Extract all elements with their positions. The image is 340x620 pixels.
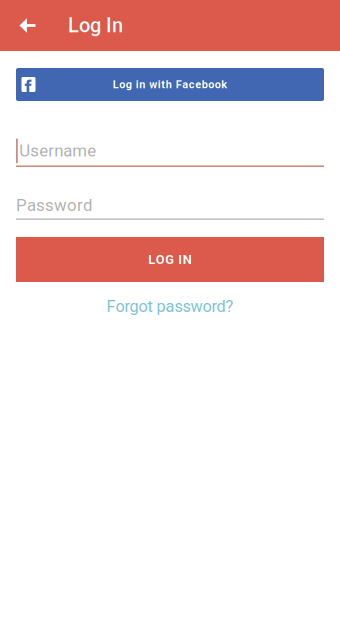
- button[interactable]: LOG IN: [16, 237, 324, 282]
- staticText: Password: [16, 195, 92, 215]
- button[interactable]: Forgot password?: [16, 287, 324, 326]
- button[interactable]: Back: [0, 0, 55, 51]
- staticText: Log In: [68, 14, 123, 37]
- staticText: Log in with Facebook: [113, 78, 227, 91]
- staticText: Username: [19, 141, 96, 161]
- button[interactable]: Log in with Facebook: [16, 68, 324, 101]
- staticText: LOG IN: [148, 252, 192, 267]
- staticText: Forgot password?: [106, 297, 233, 316]
